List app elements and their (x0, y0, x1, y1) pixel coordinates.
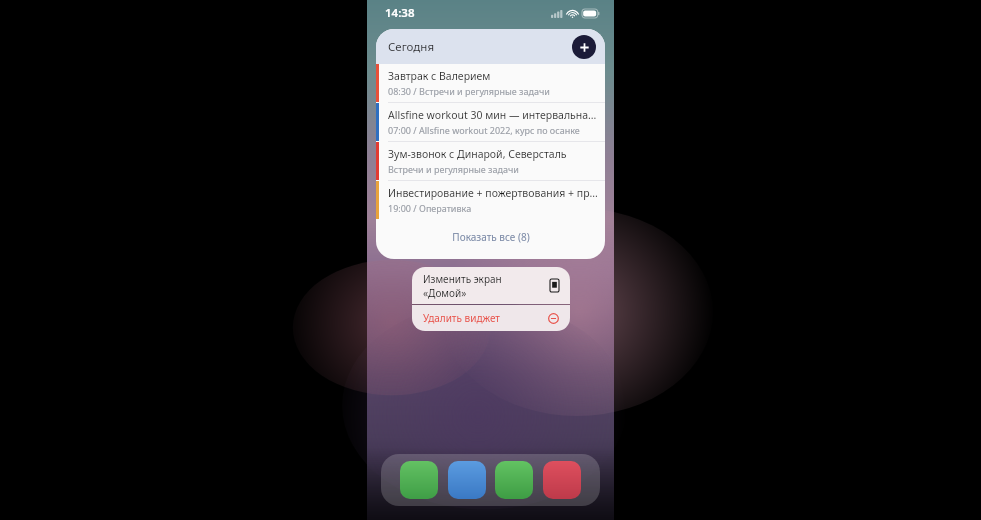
button[interactable]: Allsfine workout 30 мин — интервальная т… (376, 103, 605, 141)
button[interactable]: Показать все (8) (376, 219, 605, 255)
button[interactable]: Зум-звонок с Динарой, Северсталь (376, 142, 605, 180)
button[interactable]: Добавить событие (572, 35, 596, 59)
button[interactable]: Сегодня (376, 29, 605, 64)
staticText: Зум-звонок с Динарой, Северсталь (388, 147, 567, 161)
button[interactable]: Завтрак с Валерием (376, 64, 605, 102)
staticText: 07:00 / Allsfine workout 2022, курс по о… (388, 124, 580, 136)
staticText: Удалить виджет (423, 311, 548, 325)
staticText: Встречи и регулярные задачи (388, 163, 519, 175)
staticText: 08:30 / Встречи и регулярные задачи (388, 85, 550, 97)
button[interactable]: Инвестирование + пожертвования + прин... (376, 181, 605, 219)
staticText: Показать все (8) (452, 230, 530, 244)
button[interactable]: Телефон (400, 461, 438, 499)
staticText: 14:38 (385, 5, 415, 21)
button[interactable]: Удалить виджет (412, 305, 570, 331)
button[interactable]: Сообщения (448, 461, 486, 499)
button[interactable]: Изменить экран (412, 267, 570, 304)
staticText: 19:00 / Оперативка (388, 202, 472, 214)
staticText: Изменить экран (423, 272, 502, 286)
staticText: Инвестирование + пожертвования + прин... (388, 186, 599, 200)
staticText: Allsfine workout 30 мин — интервальная т… (388, 108, 599, 122)
staticText: Сегодня (388, 39, 435, 55)
staticText: «Домой» (423, 286, 467, 300)
button[interactable]: Музыка (543, 461, 581, 499)
button[interactable]: WhatsApp (495, 461, 533, 499)
staticText: Завтрак с Валерием (388, 69, 491, 83)
